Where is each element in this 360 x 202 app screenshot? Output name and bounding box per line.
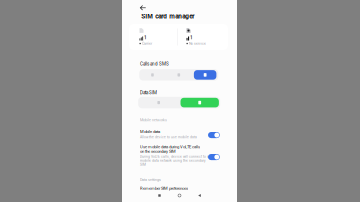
button[interactable]: SIM card manager — [141, 13, 194, 20]
staticText: Calls and SMS — [140, 61, 169, 67]
button[interactable]: Data SIM — [140, 90, 157, 95]
button[interactable]: Calls and SMS — [140, 61, 169, 67]
button[interactable] — [139, 69, 166, 81]
staticText: During VoLTE calls, device will connect … — [140, 155, 209, 159]
button[interactable]: Toggle — [208, 154, 220, 160]
button[interactable]: Mobile data — [122, 129, 237, 144]
button[interactable] — [138, 97, 179, 108]
button[interactable]: Toggle — [208, 132, 220, 138]
staticText: Carrier — [142, 41, 152, 46]
button[interactable]: Remember SIM preferences — [140, 186, 188, 191]
staticText: Use mobile data during VoLTE calls — [140, 144, 200, 149]
staticText: Allow the device to use mobile data — [140, 135, 197, 139]
staticText: Data settings — [140, 178, 161, 182]
button[interactable]: Use mobile data during VoLTE calls — [122, 144, 237, 169]
button[interactable]: 1 — [179, 24, 231, 50]
staticText: Mobile networks — [140, 118, 167, 122]
button[interactable] — [179, 97, 220, 108]
staticText: Data SIM — [140, 90, 157, 95]
staticText: No service — [189, 41, 206, 46]
staticText: 1 — [190, 35, 193, 40]
button[interactable]: Home — [169, 191, 189, 199]
staticText: mobile data network using the secondary — [140, 159, 206, 162]
staticText: SIM — [140, 163, 146, 166]
button[interactable]: Back — [137, 2, 149, 13]
staticText: 1 — [144, 35, 147, 40]
button[interactable]: 1 — [132, 24, 184, 50]
staticText: Remember SIM preferences — [140, 186, 188, 191]
staticText: on the secondary SIM — [140, 149, 176, 154]
button[interactable]: Recents — [149, 191, 169, 199]
staticText: Mobile data — [140, 129, 160, 134]
staticText: SIM card manager — [141, 13, 194, 20]
button[interactable] — [166, 69, 192, 81]
button[interactable] — [192, 69, 218, 81]
button[interactable]: Back — [189, 191, 209, 199]
